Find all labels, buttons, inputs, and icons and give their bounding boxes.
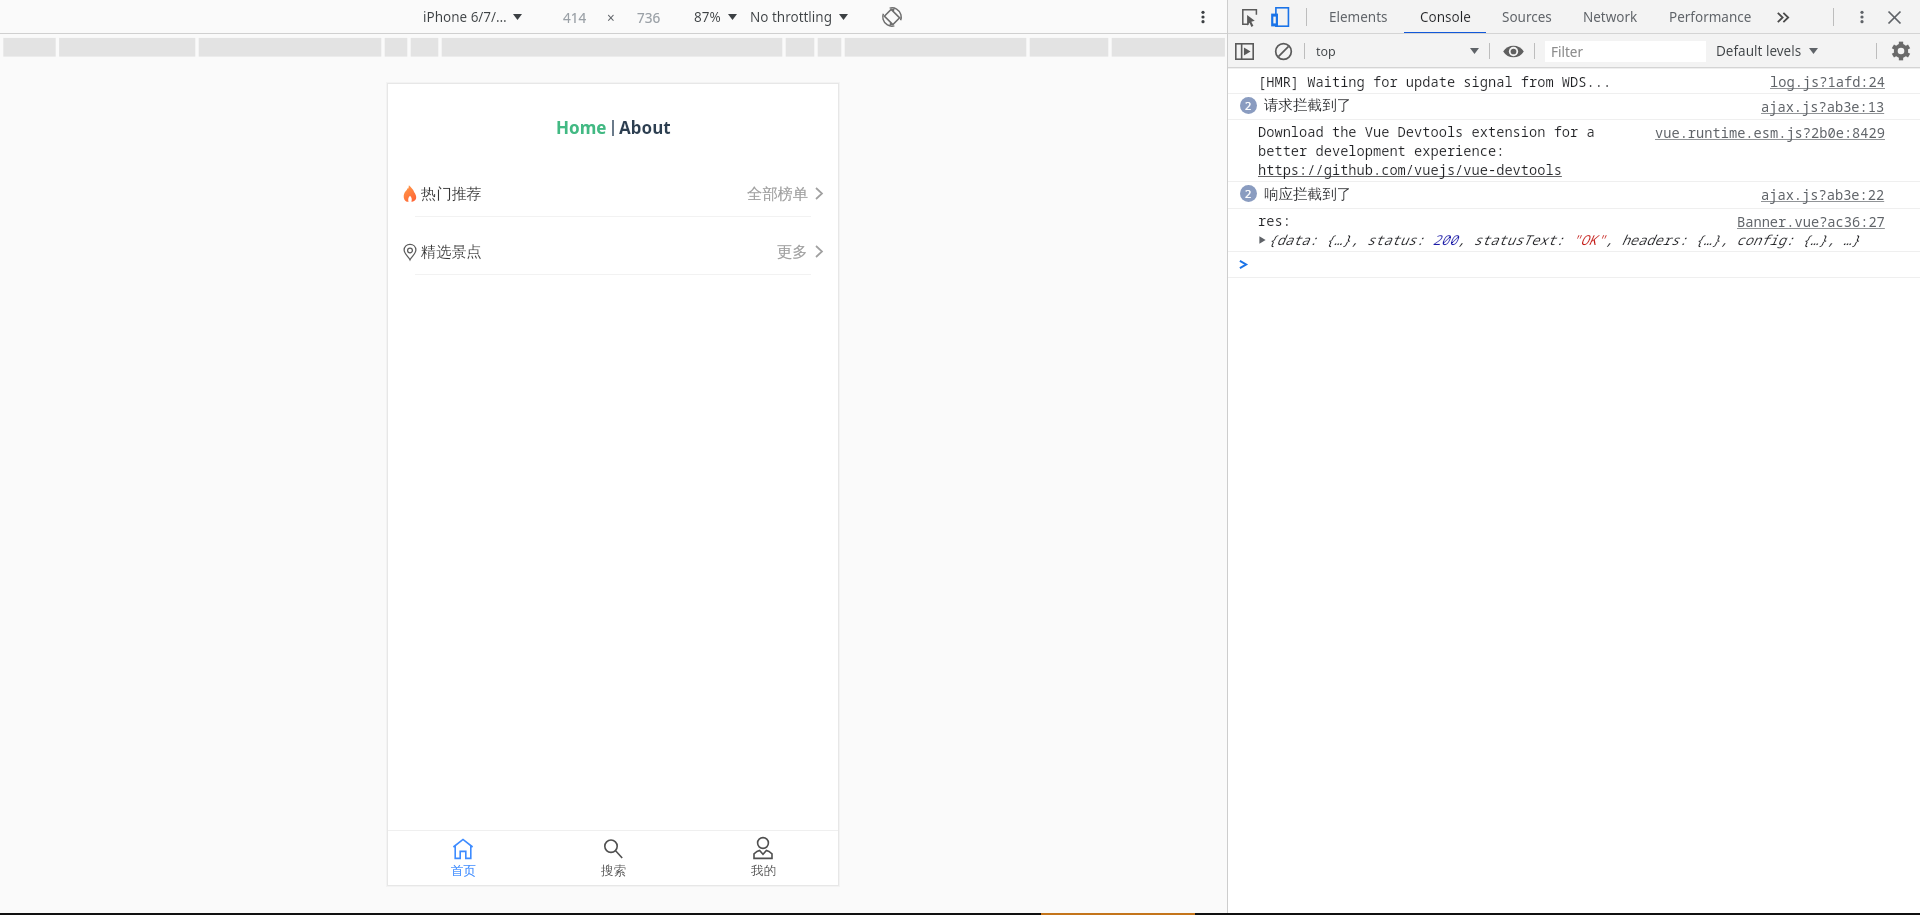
button[interactable]: Home — [556, 116, 607, 139]
staticText: ajax.js?ab3e:22 — [1761, 185, 1885, 204]
staticText: 响应拦截到了 — [1264, 185, 1351, 203]
button[interactable]: 87% — [694, 0, 737, 34]
staticText: 2 — [1245, 186, 1252, 201]
staticText: ajax.js?ab3e:13 — [1761, 97, 1885, 116]
button[interactable]: res: — [1228, 208, 1920, 251]
button[interactable]: Close DevTools — [1882, 5, 1906, 29]
staticText: better development experience: — [1258, 141, 1505, 160]
button[interactable]: More tabs — [1771, 5, 1795, 29]
button[interactable]: Performance — [1654, 0, 1766, 34]
button[interactable]: More options — [1190, 4, 1216, 30]
button[interactable]: Inspect element — [1237, 5, 1261, 29]
button[interactable]: [HMR] Waiting for update signal from WDS… — [1228, 68, 1920, 93]
staticText: Console — [1420, 8, 1471, 26]
staticText: 全部榜单 — [747, 184, 808, 203]
button[interactable]: iPhone 6/7/… — [423, 0, 522, 34]
staticText: Banner.vue?ac36:27 — [1737, 212, 1885, 231]
button[interactable]: Toggle device toolbar — [1267, 5, 1291, 29]
button[interactable]: 搜索 — [538, 830, 688, 885]
button[interactable]: Create live expression — [1501, 38, 1525, 64]
button[interactable]: Default levels — [1714, 34, 1820, 68]
staticText: iPhone 6/7/… — [423, 8, 507, 26]
staticText: Default levels — [1716, 42, 1802, 60]
staticText: Download the Vue Devtools extension for … — [1258, 122, 1595, 141]
staticText: {data: {…}, status: 200, statusText: "OK… — [1268, 230, 1860, 249]
button[interactable]: About — [619, 116, 671, 139]
staticText: 2 — [1245, 98, 1252, 113]
staticText: 736 — [637, 9, 661, 27]
button[interactable]: 我的 — [688, 830, 838, 885]
button[interactable]: 首页 — [388, 830, 538, 885]
staticText: Sources — [1502, 8, 1552, 26]
staticText: No throttling — [750, 8, 832, 26]
staticText: log.js?1afd:24 — [1770, 72, 1885, 91]
button[interactable]: Console sidebar — [1233, 38, 1256, 64]
button[interactable]: 2 — [1228, 93, 1920, 119]
staticText: 414 — [563, 9, 587, 27]
button[interactable]: Customize and control DevTools — [1850, 5, 1874, 29]
button[interactable]: Download the Vue Devtools extension for … — [1228, 119, 1920, 181]
staticText: Performance — [1669, 8, 1752, 26]
button[interactable]: No throttling — [750, 0, 848, 34]
staticText: × — [607, 9, 615, 27]
button[interactable]: top — [1314, 34, 1484, 68]
staticText: res: — [1258, 211, 1291, 230]
staticText: 更多 — [777, 242, 808, 261]
button[interactable]: Sources — [1486, 0, 1568, 34]
staticText: top — [1316, 43, 1336, 60]
staticText: 精选景点 — [421, 242, 482, 261]
staticText: 87% — [694, 8, 721, 26]
staticText: Elements — [1329, 8, 1388, 26]
button[interactable]: Clear console — [1271, 38, 1296, 64]
button[interactable] — [1228, 251, 1920, 277]
button[interactable]: Elements — [1314, 0, 1403, 34]
staticText: [HMR] Waiting for update signal from WDS… — [1258, 72, 1612, 91]
staticText: Network — [1583, 8, 1638, 26]
button[interactable]: Rotate device — [880, 5, 904, 29]
button[interactable]: Console settings — [1889, 40, 1912, 62]
staticText: https://github.com/vuejs/vue-devtools — [1258, 160, 1562, 179]
button[interactable]: Filter — [1545, 41, 1706, 62]
button[interactable]: 2 — [1228, 181, 1920, 208]
staticText: 搜索 — [601, 863, 626, 879]
button[interactable]: Console — [1404, 0, 1486, 34]
staticText: 热门推荐 — [421, 184, 482, 203]
staticText: vue.runtime.esm.js?2b0e:8429 — [1655, 123, 1885, 142]
button[interactable]: 精选景点 — [388, 228, 838, 275]
staticText: 我的 — [751, 863, 776, 879]
button[interactable]: Network — [1567, 0, 1654, 34]
button[interactable]: 热门推荐 — [388, 170, 838, 217]
staticText: 请求拦截到了 — [1264, 96, 1351, 114]
staticText: Filter — [1551, 43, 1584, 61]
staticText: 首页 — [451, 863, 476, 879]
